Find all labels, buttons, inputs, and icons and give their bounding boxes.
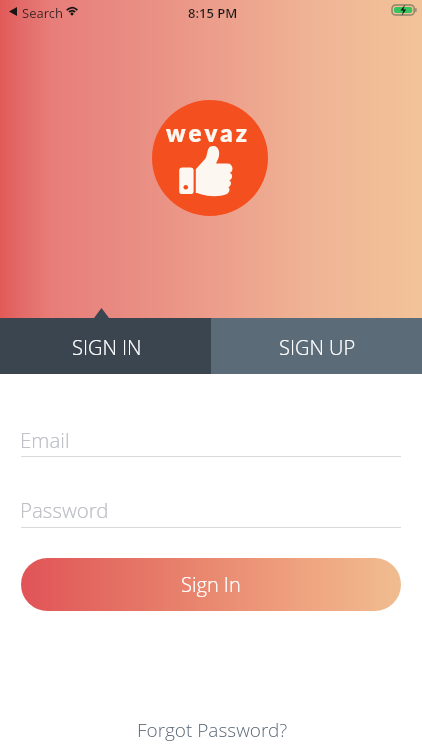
- staticText: Search: [22, 4, 63, 22]
- staticText: Sign In: [181, 571, 241, 598]
- staticText: wevaz: [166, 118, 251, 147]
- button[interactable]: Sign In: [21, 558, 401, 611]
- button[interactable]: SIGN UP: [211, 318, 422, 374]
- staticText: Forgot Password?: [137, 717, 288, 743]
- staticText: Password: [20, 496, 109, 524]
- staticText: SIGN UP: [279, 334, 356, 361]
- staticText: 8:15 PM: [188, 4, 238, 22]
- staticText: SIGN IN: [72, 334, 142, 361]
- button[interactable]: Forgot Password?: [127, 711, 298, 749]
- staticText: Email: [20, 426, 70, 454]
- button[interactable]: SIGN IN: [0, 318, 211, 374]
